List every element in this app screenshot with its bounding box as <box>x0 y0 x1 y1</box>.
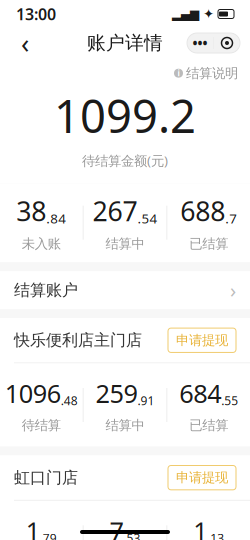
button[interactable]: Close <box>214 33 240 53</box>
staticText: ‹ <box>21 25 29 61</box>
staticText: ••• <box>192 34 207 52</box>
staticText: 13:00 <box>16 3 56 25</box>
staticText: ✦ <box>203 6 214 21</box>
staticText: .13 <box>207 530 224 540</box>
staticText: .7 <box>225 209 237 227</box>
staticText: 结算账户 <box>14 280 78 300</box>
staticText: 684 <box>179 376 221 410</box>
staticText: 待结算金额(元) <box>82 152 168 169</box>
staticText: 1 <box>26 514 40 540</box>
staticText: 1 <box>193 514 207 540</box>
button[interactable]: i <box>174 65 238 81</box>
staticText: i <box>177 68 179 78</box>
staticText: 已结算 <box>189 236 228 252</box>
staticText: ▂▄▆ <box>172 7 199 21</box>
button[interactable]: Back <box>10 29 40 57</box>
staticText: 7 <box>109 514 123 540</box>
button[interactable]: 申请提现 <box>168 465 236 490</box>
button[interactable]: More <box>187 33 213 53</box>
staticText: .79 <box>40 530 57 540</box>
staticText: .55 <box>221 393 238 408</box>
staticText: 267 <box>92 193 137 229</box>
staticText: 申请提现 <box>176 332 228 348</box>
staticText: 259 <box>95 376 137 410</box>
staticText: .53 <box>123 530 140 540</box>
staticText: 688 <box>180 193 225 229</box>
staticText: › <box>230 277 236 303</box>
staticText: .54 <box>137 209 157 227</box>
button[interactable]: 申请提现 <box>168 328 236 352</box>
button[interactable]: 结算账户 <box>0 271 250 309</box>
staticText: 未入账 <box>22 236 61 252</box>
staticText: 快乐便利店主门店 <box>14 330 142 350</box>
staticText: 申请提现 <box>176 469 228 486</box>
staticText: .48 <box>61 393 78 408</box>
staticText: 账户详情 <box>87 31 163 54</box>
staticText: .84 <box>46 209 66 227</box>
staticText: 38 <box>16 193 46 229</box>
staticText: 已结算 <box>189 417 228 433</box>
staticText: 结算中 <box>105 417 144 433</box>
staticText: 1099.2 <box>54 85 196 146</box>
staticText: 结算中 <box>105 236 144 252</box>
staticText: 结算说明 <box>186 65 238 81</box>
staticText: 1096 <box>5 376 61 410</box>
staticText: 待结算 <box>22 417 61 433</box>
staticText: 虹口门店 <box>14 468 78 487</box>
staticText: .91 <box>137 393 154 408</box>
